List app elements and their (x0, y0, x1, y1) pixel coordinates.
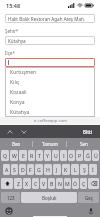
button[interactable]: I (60, 150, 67, 161)
button[interactable]: M (64, 178, 71, 189)
button[interactable]: Previous field (5, 127, 15, 137)
staticText: J (56, 166, 58, 173)
staticText: X (25, 180, 29, 187)
button[interactable]: Dictation (87, 207, 95, 215)
button[interactable]: C (32, 178, 39, 189)
staticText: C (34, 180, 38, 187)
staticText: N (58, 180, 62, 187)
button[interactable]: Ben (0, 138, 32, 150)
staticText: Y (46, 152, 49, 159)
staticText: G (37, 166, 41, 173)
staticText: Kütahya (10, 109, 30, 116)
button[interactable]: H (44, 164, 52, 175)
staticText: Bitti (83, 129, 93, 135)
button[interactable]: T (36, 150, 43, 161)
staticText: 15:48 (6, 2, 21, 9)
button[interactable]: İ (89, 164, 97, 175)
button[interactable]: Kılıç (5, 77, 95, 87)
button[interactable]: R (28, 150, 35, 161)
button[interactable]: Geç (78, 192, 99, 203)
staticText: Kütahya (8, 38, 26, 44)
button[interactable]: J (53, 164, 61, 175)
staticText: S (13, 166, 16, 173)
button[interactable]: E (19, 150, 27, 161)
staticText: Ğ (86, 152, 90, 159)
button[interactable]: P (76, 150, 83, 161)
button[interactable]: Konya (5, 97, 95, 107)
staticText: H (46, 166, 50, 173)
staticText: K (64, 166, 68, 173)
button[interactable]: Z (14, 178, 22, 189)
button[interactable]: Shift (1, 178, 13, 189)
button[interactable]: Ğ (84, 150, 91, 161)
button[interactable]: L (71, 164, 79, 175)
button[interactable]: Sen (67, 138, 100, 150)
button[interactable]: e-coffeeapp.com (0, 117, 100, 125)
staticText: E (22, 152, 25, 159)
button[interactable]: Kurtuşmen (5, 67, 95, 77)
staticText: Ş (83, 166, 86, 173)
button[interactable]: Boşluk (21, 192, 77, 203)
button[interactable]: W (10, 150, 18, 161)
staticText: W (12, 152, 17, 159)
staticText: Kozaalı (10, 89, 27, 96)
button[interactable]: N (56, 178, 63, 189)
staticText: L (74, 166, 77, 173)
staticText: R (30, 152, 34, 159)
button[interactable]: D (19, 164, 26, 175)
staticText: Ç (82, 180, 86, 187)
button[interactable]: 123 (1, 192, 20, 203)
button[interactable]: Bitti (81, 127, 95, 137)
button[interactable]: Tamam (33, 138, 66, 150)
staticText: A (5, 166, 9, 173)
staticText: Z (17, 180, 20, 187)
button[interactable]: Kozaalı (5, 87, 95, 97)
staticText: İ (92, 166, 94, 173)
button[interactable]: Backspace (88, 178, 99, 189)
staticText: P (78, 152, 82, 159)
button[interactable]: Q (1, 150, 9, 161)
button[interactable]: G (35, 164, 43, 175)
staticText: I (63, 152, 65, 159)
button[interactable]: Emoji (5, 207, 13, 215)
staticText: Konya (10, 99, 25, 106)
staticText: B (50, 180, 54, 187)
staticText: Geç (85, 195, 93, 201)
button[interactable]: Ü (92, 150, 99, 161)
staticText: Şehir* (5, 28, 19, 34)
staticText: Halit Balık Restoran Agah Ateş Mah. Tayy… (8, 16, 92, 22)
button[interactable]: V (40, 178, 47, 189)
staticText: Q (3, 152, 8, 159)
button[interactable]: Ş (80, 164, 88, 175)
button[interactable]: S (11, 164, 18, 175)
button[interactable]: Kütahya (5, 36, 95, 45)
staticText: Boşluk (42, 195, 57, 201)
button[interactable]: B (48, 178, 55, 189)
button[interactable]: F (27, 164, 34, 175)
button[interactable]: U (52, 150, 59, 161)
button[interactable] (5, 58, 95, 67)
button[interactable]: Ö (72, 178, 79, 189)
staticText: Tamam (42, 141, 58, 147)
button[interactable]: Halit Balık Restoran Agah Ateş Mah. Tayy… (5, 14, 95, 23)
staticText: Ö (73, 180, 78, 187)
staticText: Sen (80, 141, 88, 147)
staticText: F (29, 166, 32, 173)
button[interactable]: Kütahya (5, 107, 95, 117)
button[interactable]: A (3, 164, 10, 175)
staticText: D (21, 166, 25, 173)
staticText: Ü (94, 152, 98, 159)
button[interactable]: Ç (80, 178, 87, 189)
button[interactable]: Next field (19, 127, 29, 137)
staticText: İlçe* (5, 50, 15, 56)
staticText: Ben (12, 141, 21, 147)
button[interactable]: K (62, 164, 70, 175)
button[interactable]: X (23, 178, 31, 189)
staticText: O (69, 152, 74, 159)
staticText: Kurtuşmen (10, 69, 37, 76)
staticText: T (38, 152, 41, 159)
staticText: e-coffeeapp.com (34, 118, 67, 124)
button[interactable]: Y (44, 150, 51, 161)
button[interactable]: O (68, 150, 75, 161)
staticText: 123 (7, 195, 15, 201)
